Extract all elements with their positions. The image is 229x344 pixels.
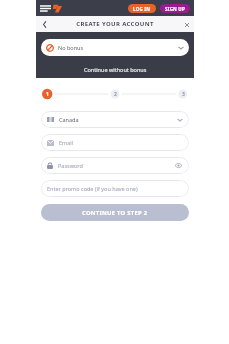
button[interactable]: 2 [109, 88, 121, 100]
button[interactable]: SIGN UP [160, 4, 190, 13]
button[interactable]: Canada [41, 111, 189, 128]
button[interactable]: LOG IN [128, 4, 156, 13]
staticText: 2 [114, 91, 117, 98]
button[interactable]: Continue without bonus [78, 64, 153, 75]
staticText: 1 [46, 91, 49, 98]
button[interactable]: Back [38, 18, 50, 30]
button[interactable]: No bonus [41, 39, 189, 56]
staticText: Continue without bonus [84, 66, 147, 73]
button[interactable]: 1 [41, 88, 53, 100]
button[interactable]: Email [41, 134, 189, 151]
button[interactable]: Show password [174, 161, 183, 170]
button[interactable]: Password [41, 157, 189, 174]
button[interactable]: Menu [39, 1, 63, 15]
button[interactable]: CONTINUE TO STEP 2 [41, 204, 189, 221]
staticText: 3 [182, 91, 185, 98]
staticText: Canada [59, 116, 79, 123]
staticText: LOG IN [133, 6, 151, 12]
button[interactable]: 3 [177, 88, 189, 100]
button[interactable]: Close [181, 19, 192, 30]
staticText: CONTINUE TO STEP 2 [82, 209, 148, 217]
staticText: SIGN UP [165, 6, 185, 12]
staticText: Email [59, 139, 74, 146]
staticText: No bonus [58, 44, 84, 51]
staticText: Password [58, 162, 83, 169]
staticText: Enter promo code (if you have one) [47, 185, 138, 192]
button[interactable]: Enter promo code (if you have one) [41, 180, 189, 197]
staticText: CREATE YOUR ACCOUNT [76, 20, 154, 28]
